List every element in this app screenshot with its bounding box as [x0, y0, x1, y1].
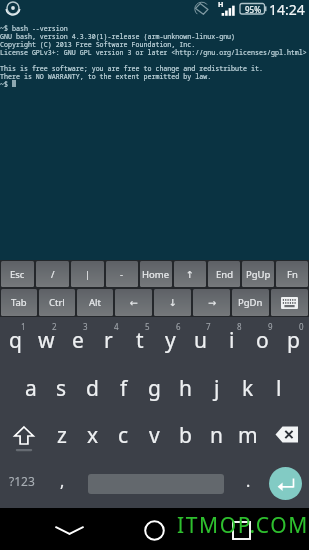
button[interactable]: h — [170, 364, 201, 411]
button[interactable]: - — [106, 261, 138, 287]
button[interactable]: , — [46, 458, 77, 508]
button[interactable]: b — [170, 411, 201, 458]
staticText: s — [56, 374, 67, 403]
button[interactable]: ?123 — [0, 458, 46, 508]
button[interactable]: Fn — [276, 261, 308, 287]
staticText: e — [72, 326, 84, 355]
staticText: u — [194, 326, 207, 355]
staticText: z — [57, 421, 67, 450]
button[interactable]: Recent apps — [217, 508, 265, 550]
staticText: ← — [130, 297, 138, 308]
staticText: m — [238, 421, 258, 450]
button[interactable]: v — [139, 411, 170, 458]
button[interactable]: k — [232, 364, 263, 411]
button[interactable]: z — [46, 411, 77, 458]
staticText: n — [210, 421, 223, 450]
button[interactable]: PgUp — [242, 261, 274, 287]
staticText: PgDn — [238, 296, 263, 309]
staticText: 95% — [245, 4, 261, 15]
button[interactable]: Back — [45, 508, 93, 550]
staticText: H — [218, 0, 224, 10]
staticText: q — [9, 326, 22, 355]
staticText: 0 — [299, 321, 304, 332]
button[interactable]: . — [232, 458, 263, 508]
button[interactable]: m — [232, 411, 263, 458]
button[interactable]: ↑ — [174, 261, 206, 287]
staticText: v — [149, 421, 160, 450]
button[interactable]: j — [201, 364, 232, 411]
button[interactable]: Show keyboard — [271, 289, 308, 316]
button[interactable]: 9 — [247, 317, 278, 364]
staticText: - — [120, 268, 124, 281]
button[interactable]: 8 — [216, 317, 247, 364]
button[interactable]: c — [108, 411, 139, 458]
staticText: 2 — [52, 321, 57, 332]
button[interactable]: 0 — [278, 317, 309, 364]
button[interactable]: 2 — [31, 317, 62, 364]
staticText: 4 — [114, 321, 119, 332]
staticText: Esc — [10, 268, 25, 281]
staticText: / — [51, 268, 55, 281]
button[interactable]: Tab — [1, 289, 37, 316]
staticText: w — [38, 326, 55, 355]
staticText: ITMOP.COM — [177, 511, 309, 540]
staticText: Home — [142, 268, 170, 281]
button[interactable]: Shift — [0, 411, 46, 458]
button[interactable]: 3 — [62, 317, 93, 364]
staticText: 9 — [268, 321, 273, 332]
staticText: o — [256, 326, 269, 355]
button[interactable]: a — [15, 364, 46, 411]
staticText: , — [60, 470, 65, 492]
button[interactable]: Alt — [77, 289, 113, 316]
staticText: ~$ bash --version GNU bash, version 4.3.… — [0, 24, 307, 89]
button[interactable]: g — [139, 364, 170, 411]
staticText: PgUp — [246, 268, 271, 281]
staticText: . — [246, 470, 251, 492]
button[interactable]: 1 — [0, 317, 31, 364]
button[interactable]: f — [108, 364, 139, 411]
button[interactable]: PgDn — [232, 289, 269, 316]
button[interactable]: 5 — [124, 317, 155, 364]
staticText: d — [86, 374, 99, 403]
button[interactable]: ↓ — [154, 289, 191, 316]
button[interactable]: Home — [140, 261, 172, 287]
button[interactable]: Backspace — [263, 411, 309, 458]
button[interactable]: End — [208, 261, 240, 287]
button[interactable]: ← — [115, 289, 152, 316]
staticText: ?123 — [9, 473, 35, 489]
button[interactable]: x — [77, 411, 108, 458]
staticText: Ctrl — [49, 296, 65, 309]
staticText: 8 — [237, 321, 242, 332]
button[interactable]: 6 — [155, 317, 186, 364]
staticText: 6 — [176, 321, 181, 332]
staticText: x — [87, 421, 99, 450]
staticText: | — [85, 268, 91, 281]
button[interactable]: l — [263, 364, 294, 411]
staticText: End — [216, 268, 233, 281]
staticText: → — [208, 297, 216, 308]
button[interactable]: s — [46, 364, 77, 411]
button[interactable]: Esc — [1, 261, 34, 287]
staticText: c — [118, 421, 129, 450]
staticText: 14:24 — [269, 0, 305, 18]
staticText: 5 — [145, 321, 150, 332]
staticText: g — [148, 374, 161, 403]
button[interactable]: Home — [130, 508, 178, 550]
button[interactable]: 4 — [93, 317, 124, 364]
button[interactable]: → — [193, 289, 230, 316]
staticText: Alt — [89, 296, 101, 309]
staticText: t — [136, 326, 144, 355]
button[interactable]: d — [77, 364, 108, 411]
staticText: k — [242, 374, 254, 403]
button[interactable]: / — [36, 261, 69, 287]
staticText: r — [104, 326, 113, 355]
button[interactable]: n — [201, 411, 232, 458]
button[interactable]: Ctrl — [39, 289, 75, 316]
staticText: ↓ — [169, 297, 177, 308]
staticText: 1 — [21, 321, 26, 332]
button[interactable]: 7 — [185, 317, 216, 364]
button[interactable]: Enter — [269, 467, 302, 500]
button[interactable]: | — [71, 261, 104, 287]
staticText: l — [276, 374, 282, 403]
